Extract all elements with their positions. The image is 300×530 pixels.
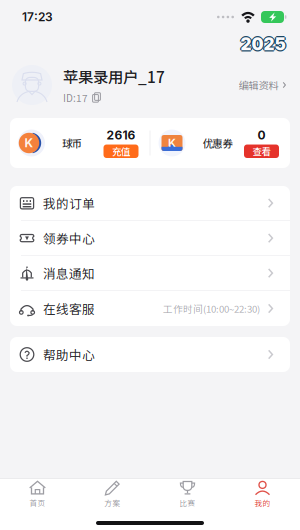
staticText: 2025: [240, 32, 285, 53]
staticText: 2025: [240, 34, 285, 54]
staticText: 17:23: [22, 10, 53, 24]
staticText: 球币: [62, 135, 82, 151]
staticText: 优惠券: [202, 135, 232, 151]
button[interactable]: 领券中心: [10, 221, 290, 256]
button[interactable]: 比赛: [150, 479, 225, 519]
button[interactable]: 充值: [103, 144, 138, 158]
button[interactable]: 帮助中心: [10, 337, 290, 372]
staticText: 2025: [242, 34, 287, 54]
staticText: 2616: [106, 128, 135, 142]
staticText: K: [24, 136, 33, 150]
staticText: 查看: [252, 144, 270, 158]
staticText: 0: [257, 128, 265, 142]
staticText: 2025: [239, 34, 284, 54]
staticText: 苹果录用户_17: [63, 65, 165, 87]
staticText: 首页: [29, 497, 45, 508]
button[interactable]: 我的: [225, 479, 300, 519]
staticText: 我的订单: [43, 194, 95, 212]
staticText: 编辑资料: [239, 78, 279, 92]
staticText: 我的: [254, 497, 270, 508]
button[interactable]: 查看: [244, 144, 279, 158]
staticText: 方案: [104, 497, 120, 508]
staticText: 在线客服: [43, 299, 95, 318]
staticText: K: [168, 136, 176, 149]
staticText: 消息通知: [43, 264, 95, 282]
staticText: ID:17: [63, 90, 88, 105]
staticText: 工作时间(10:00~22:30): [163, 301, 260, 315]
button[interactable]: 在线客服: [10, 291, 290, 326]
staticText: 帮助中心: [43, 345, 95, 364]
button[interactable]: 方案: [75, 479, 150, 519]
staticText: 充值: [112, 144, 130, 158]
staticText: 2025: [240, 35, 285, 55]
staticText: 比赛: [179, 497, 195, 508]
button[interactable]: 消息通知: [10, 256, 290, 291]
button[interactable]: 编辑资料: [239, 70, 286, 100]
button[interactable]: 首页: [0, 479, 75, 519]
staticText: 领券中心: [43, 229, 95, 247]
button[interactable]: 我的订单: [10, 186, 290, 221]
